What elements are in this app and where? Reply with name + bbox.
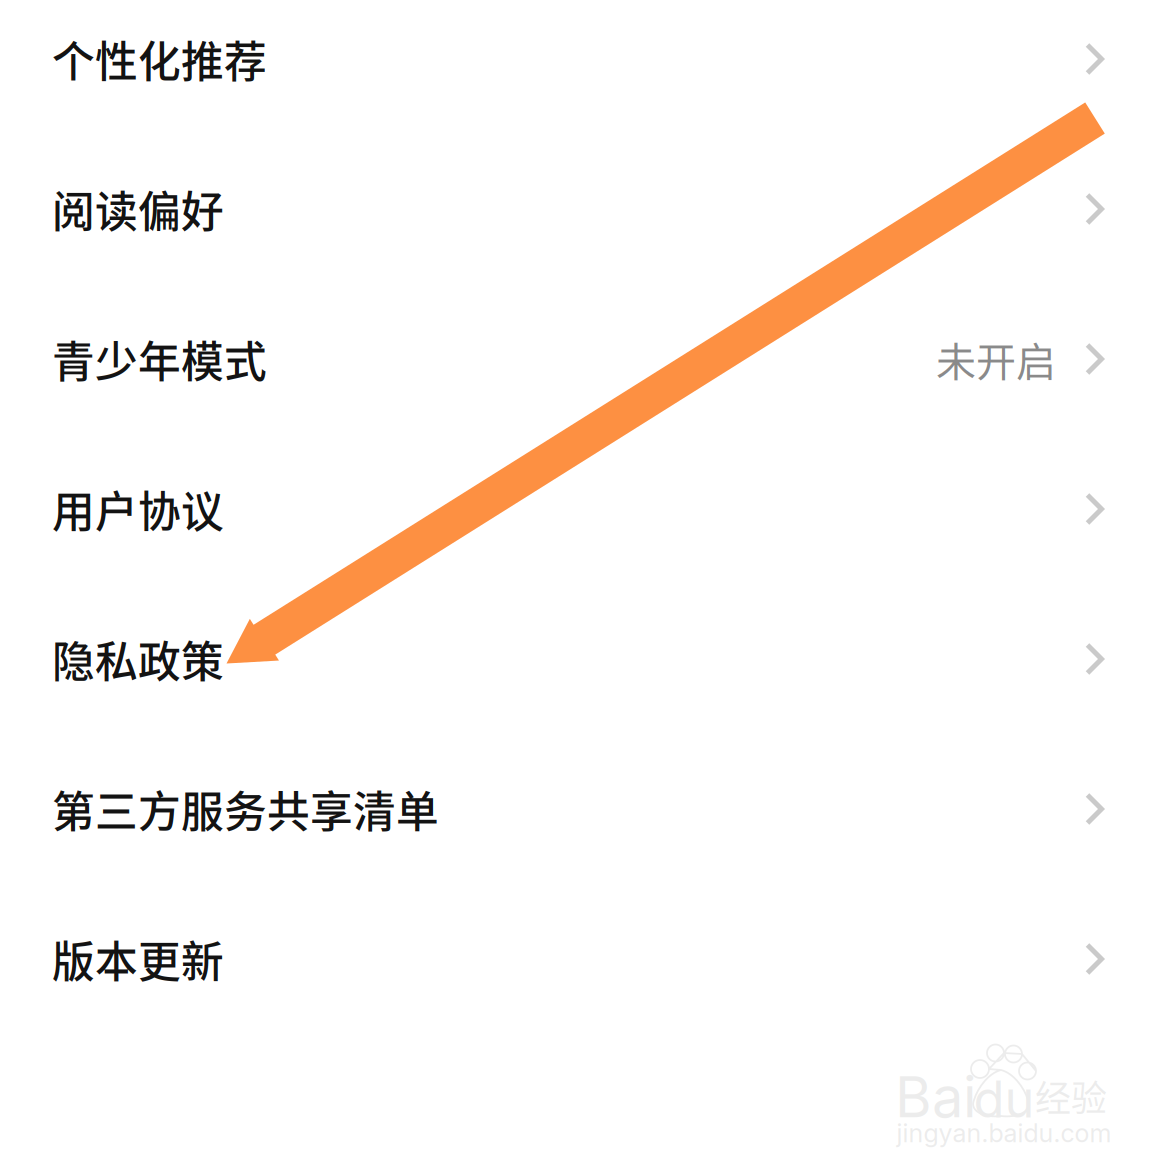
button[interactable]: 第三方服务共享清单 [0, 734, 1173, 884]
button[interactable]: 隐私政策 [0, 584, 1173, 734]
button[interactable]: 版本更新 [0, 884, 1173, 1034]
button[interactable]: 阅读偏好 [0, 134, 1173, 284]
staticText: 版本更新 [52, 928, 224, 990]
button[interactable]: 个性化推荐 [0, 0, 1173, 134]
staticText: 阅读偏好 [52, 178, 224, 240]
staticText: 青少年模式 [52, 328, 267, 390]
staticText: 隐私政策 [52, 628, 224, 690]
staticText: 用户协议 [52, 478, 224, 540]
button[interactable]: 用户协议 [0, 434, 1173, 584]
staticText: Bai [895, 1063, 977, 1131]
staticText: du [973, 1068, 1034, 1130]
button[interactable]: 青少年模式 [0, 284, 1173, 434]
staticText: jingyan.baidu.com [896, 1118, 1111, 1148]
staticText: 个性化推荐 [52, 28, 267, 90]
staticText: 经验 [1035, 1070, 1107, 1122]
staticText: 第三方服务共享清单 [52, 778, 439, 840]
staticText: 未开启 [936, 330, 1056, 388]
